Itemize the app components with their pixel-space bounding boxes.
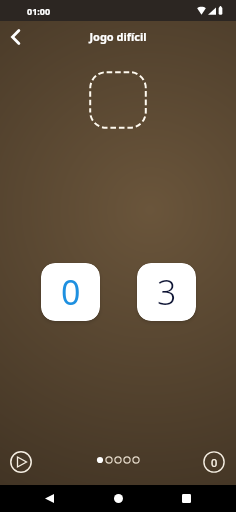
button[interactable]: Home bbox=[103, 485, 133, 512]
button[interactable]: 0 bbox=[203, 451, 225, 473]
staticText: Jogo difícil bbox=[89, 29, 147, 44]
staticText: 3 bbox=[157, 269, 177, 315]
staticText: 01:00 bbox=[27, 5, 51, 17]
button[interactable]: 0 bbox=[41, 263, 100, 321]
button[interactable]: Back bbox=[4, 25, 28, 49]
button[interactable]: Back bbox=[34, 485, 64, 512]
button[interactable]: Play bbox=[10, 451, 32, 473]
button[interactable]: Recents bbox=[171, 485, 201, 512]
button[interactable]: 3 bbox=[137, 263, 196, 321]
staticText: 0 bbox=[61, 269, 81, 315]
staticText: 0 bbox=[211, 455, 218, 470]
